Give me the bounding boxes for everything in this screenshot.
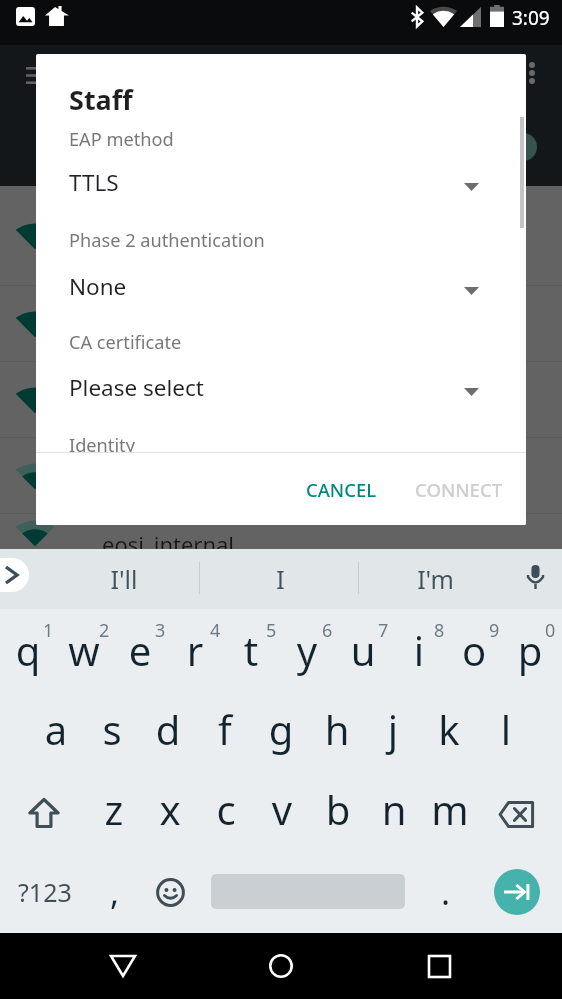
staticText: I'll — [110, 562, 138, 596]
button[interactable]: r — [167, 623, 223, 679]
button[interactable]: c — [198, 782, 254, 838]
button[interactable]: u — [335, 623, 391, 679]
button[interactable]: x — [142, 782, 198, 838]
button[interactable]: g — [253, 702, 309, 758]
staticText: d — [140, 702, 196, 756]
staticText: x — [142, 782, 198, 836]
button[interactable]: z — [86, 782, 142, 838]
button[interactable]: b — [310, 782, 366, 838]
button[interactable]: m — [422, 782, 478, 838]
button[interactable]: CANCEL — [286, 460, 396, 518]
staticText: g — [253, 702, 309, 756]
button[interactable]: Open navigation drawer — [14, 50, 60, 96]
staticText: 8 — [434, 618, 445, 643]
button[interactable]: Expand suggestions — [0, 558, 29, 592]
staticText: Identity — [69, 433, 135, 458]
button[interactable]: n — [366, 782, 422, 838]
staticText: i — [391, 623, 447, 677]
button[interactable]: . — [424, 865, 468, 919]
button[interactable]: Add network — [509, 133, 537, 161]
staticText: 7 — [378, 618, 389, 643]
staticText: ?123 — [18, 875, 72, 909]
staticText: 0 — [545, 618, 556, 643]
button[interactable]: Staff — [0, 362, 562, 437]
staticText: Gast — [102, 320, 149, 350]
button[interactable]: I'll — [69, 549, 179, 609]
button[interactable]: eosi_internal — [0, 514, 562, 552]
staticText: o — [446, 623, 502, 677]
button[interactable]: s — [84, 702, 140, 758]
staticText: y — [279, 623, 335, 677]
staticText: 6 — [322, 618, 333, 643]
staticText: 5 — [266, 618, 277, 643]
staticText: s — [84, 702, 140, 756]
button[interactable]: k — [421, 702, 477, 758]
button[interactable]: l — [478, 702, 534, 758]
button[interactable]: I'm — [380, 549, 490, 609]
staticText: 3:09 — [512, 5, 550, 31]
button[interactable]: Emoji — [148, 865, 192, 919]
button[interactable]: o — [446, 623, 502, 679]
staticText: e — [112, 623, 168, 677]
staticText: q — [0, 623, 56, 677]
staticText: t — [223, 623, 279, 677]
button[interactable]: Next — [494, 869, 540, 915]
button[interactable]: More options — [508, 50, 554, 96]
button[interactable]: Recents — [415, 942, 463, 990]
staticText: n — [366, 782, 422, 836]
button[interactable]: q — [0, 623, 56, 679]
staticText: h — [309, 702, 365, 756]
staticText: I — [276, 562, 285, 596]
button[interactable]: Back — [99, 942, 147, 990]
button[interactable]: I — [225, 549, 335, 609]
button[interactable]: a — [28, 702, 84, 758]
button[interactable]: j — [365, 702, 421, 758]
staticText: k — [421, 702, 477, 756]
staticText: , — [110, 869, 120, 915]
staticText: . — [441, 869, 451, 915]
staticText: Phase 2 authentication — [69, 228, 265, 253]
button[interactable]: Please select — [36, 357, 526, 422]
button[interactable]: Home — [257, 942, 305, 990]
button[interactable]: eduroam — [0, 186, 562, 285]
button[interactable]: y — [279, 623, 335, 679]
button[interactable]: v — [254, 782, 310, 838]
staticText: l — [478, 702, 534, 756]
staticText: Staff — [69, 81, 133, 118]
button[interactable]: Backspace — [489, 785, 545, 841]
button[interactable]: TTLS — [36, 154, 526, 217]
button[interactable]: Gast — [0, 286, 562, 361]
button[interactable]: e — [112, 623, 168, 679]
button[interactable]: visitor — [0, 438, 562, 513]
button[interactable]: w — [56, 623, 112, 679]
button[interactable]: d — [140, 702, 196, 758]
button[interactable]: None — [36, 255, 526, 321]
staticText: c — [198, 782, 254, 836]
button[interactable]: h — [309, 702, 365, 758]
staticText: 4 — [210, 618, 221, 643]
staticText: 9 — [489, 618, 500, 643]
staticText: CA certificate — [69, 330, 182, 355]
staticText: r — [167, 623, 223, 677]
button[interactable]: f — [197, 702, 253, 758]
button[interactable]: Shift — [16, 785, 72, 841]
staticText: I'm — [417, 562, 454, 596]
staticText: b — [310, 782, 366, 836]
button[interactable]: ?123 — [12, 865, 78, 919]
staticText: w — [56, 623, 112, 677]
button[interactable]: i — [391, 623, 447, 679]
button[interactable]: , — [93, 865, 137, 919]
staticText: u — [335, 623, 391, 677]
button[interactable]: p — [502, 623, 558, 679]
button[interactable]: CONNECT — [399, 460, 519, 518]
button[interactable]: t — [223, 623, 279, 679]
staticText: eosi_internal — [102, 529, 235, 559]
button[interactable]: Voice input — [515, 557, 555, 597]
staticText: m — [422, 782, 478, 836]
staticText: eduroam — [102, 232, 197, 262]
staticText: Please select — [69, 372, 204, 403]
staticText: None — [69, 271, 127, 302]
staticText: 1 — [43, 618, 54, 643]
